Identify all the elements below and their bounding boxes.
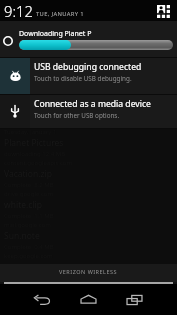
staticText: Touch for other USB options. — [34, 111, 120, 120]
staticText: 9:12 — [4, 1, 33, 21]
staticText: Connected as a media device — [34, 98, 151, 110]
button[interactable]: Connected as a media device — [0, 95, 177, 128]
button[interactable]: Home — [65, 284, 111, 315]
staticText: VERIZON WIRELESS — [59, 268, 118, 275]
button[interactable]: Recent apps — [111, 284, 157, 315]
staticText: USB debugging connected — [34, 61, 142, 73]
button[interactable]: Back — [19, 284, 65, 315]
staticText: Downloading Planet P — [19, 29, 92, 39]
button[interactable]: Downloading Planet P — [0, 21, 177, 57]
button[interactable]: USB debugging connected — [0, 58, 177, 94]
staticText: Touch to disable USB debugging. — [34, 74, 132, 83]
staticText: TUE, JANUARY 1 — [36, 10, 84, 18]
button[interactable]: Quick settings — [157, 5, 170, 18]
